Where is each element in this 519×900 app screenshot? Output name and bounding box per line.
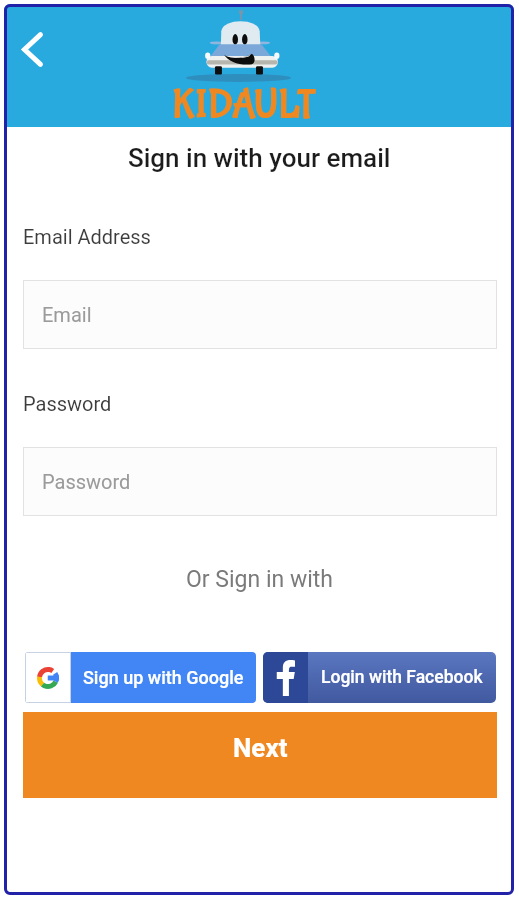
staticText: Login with Facebook (321, 667, 483, 688)
staticText: Sign in with your email (128, 143, 391, 173)
staticText: Or Sign in with (186, 566, 333, 593)
staticText: KIDAULT (172, 82, 317, 130)
staticText: Password (42, 470, 131, 493)
button[interactable]: Next (23, 712, 497, 798)
button[interactable]: Login with Facebook (263, 652, 496, 703)
staticText: Email (42, 303, 92, 326)
button[interactable]: Sign up with Google (25, 652, 256, 703)
staticText: Password (23, 392, 112, 415)
staticText: Next (233, 733, 288, 763)
button[interactable]: Email (23, 280, 497, 349)
button[interactable]: Password (23, 447, 497, 516)
staticText: Sign up with Google (83, 667, 244, 688)
staticText: Email Address (23, 225, 151, 248)
button[interactable]: Back (9, 26, 55, 72)
